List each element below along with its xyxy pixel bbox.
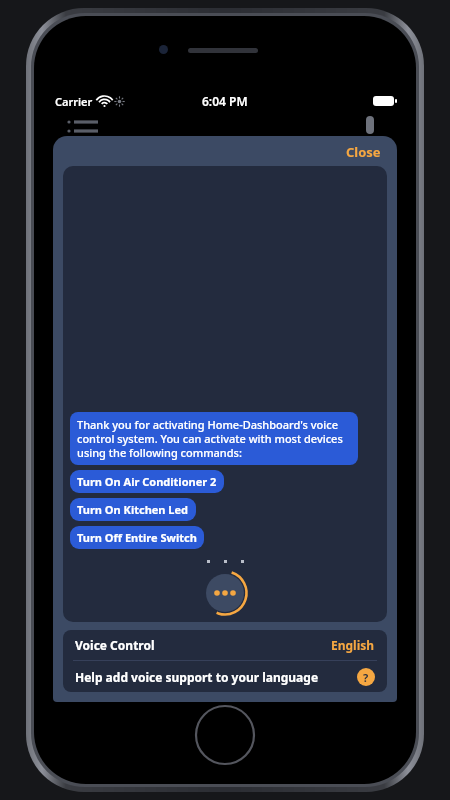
button[interactable]: Help add voice support to your language — [63, 661, 387, 692]
button[interactable]: Thank you for activating Home-Dashboard'… — [70, 412, 358, 465]
staticText: Close — [346, 143, 381, 161]
staticText: Turn Off Entire Switch — [77, 530, 197, 545]
button[interactable]: Turn Off Entire Switch — [70, 526, 204, 549]
button[interactable]: Start voice listening — [202, 570, 248, 616]
staticText: ? — [363, 670, 369, 685]
staticText: Thank you for activating Home-Dashboard'… — [77, 417, 351, 460]
staticText: English — [331, 637, 375, 653]
staticText: 6:04 PM — [202, 93, 248, 109]
staticText: Turn On Air Conditioner 2 — [77, 474, 217, 489]
button[interactable]: Close — [338, 138, 389, 166]
button[interactable]: Voice Control — [63, 630, 387, 660]
staticText: Voice Control — [75, 637, 155, 653]
staticText: Help add voice support to your language — [75, 669, 319, 685]
button[interactable]: Turn On Air Conditioner 2 — [70, 470, 224, 493]
button[interactable]: Turn On Kitchen Led — [70, 498, 196, 521]
other: Help — [357, 668, 375, 686]
staticText: Turn On Kitchen Led — [77, 502, 189, 517]
staticText: Carrier — [55, 94, 93, 109]
